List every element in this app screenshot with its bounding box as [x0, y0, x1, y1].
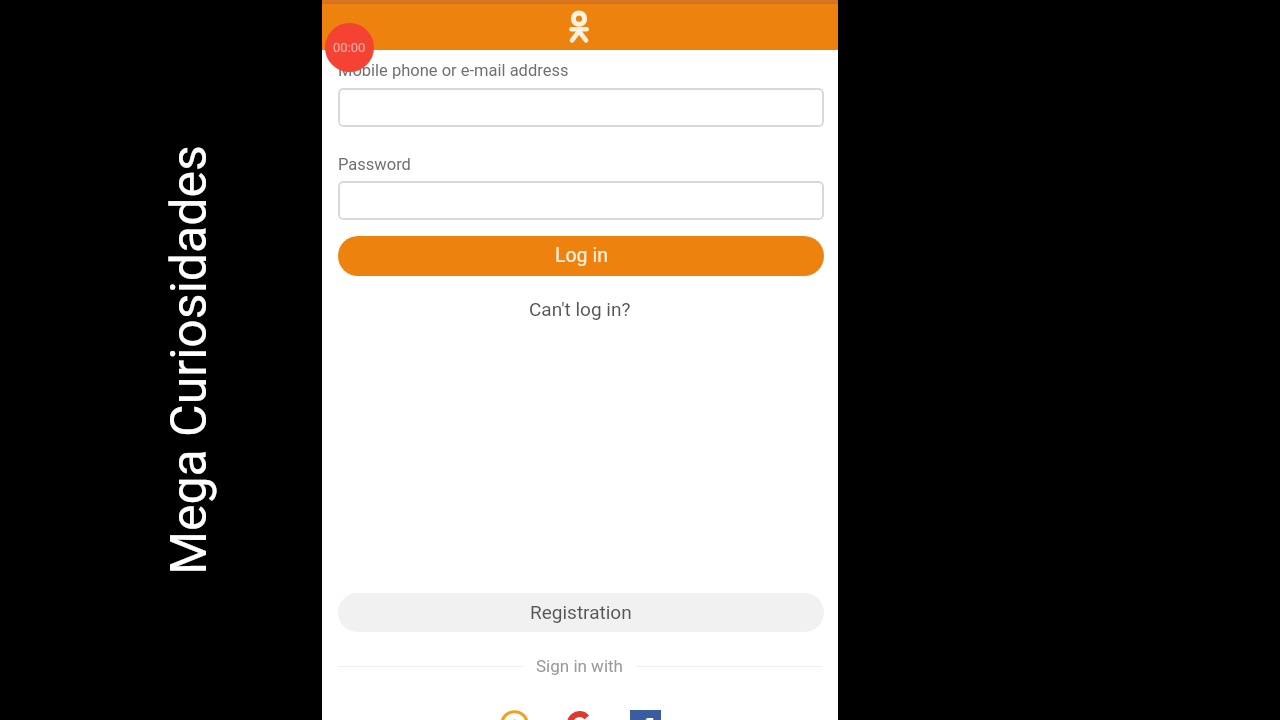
button[interactable]: Registration [338, 593, 824, 632]
staticText: Mobile phone or e-mail address [338, 61, 569, 80]
staticText: Log in [555, 244, 608, 267]
button[interactable] [338, 88, 824, 127]
staticText: Password [338, 155, 411, 174]
other: Odnoklassniki [569, 10, 589, 42]
staticText: Mega Curiosidades [160, 145, 219, 575]
staticText: Registration [530, 601, 632, 623]
button[interactable]: Log in [338, 236, 824, 276]
button[interactable]: Sign in with Google [567, 711, 592, 720]
button[interactable]: Can't log in? [515, 295, 645, 323]
button[interactable] [338, 181, 824, 220]
button[interactable]: Sign in with Facebook [630, 710, 661, 720]
staticText: Can't log in? [529, 298, 631, 320]
button[interactable]: Sign in with Mail.ru [500, 710, 529, 720]
staticText: 00:00 [333, 40, 366, 55]
staticText: Sign in with [536, 656, 623, 676]
